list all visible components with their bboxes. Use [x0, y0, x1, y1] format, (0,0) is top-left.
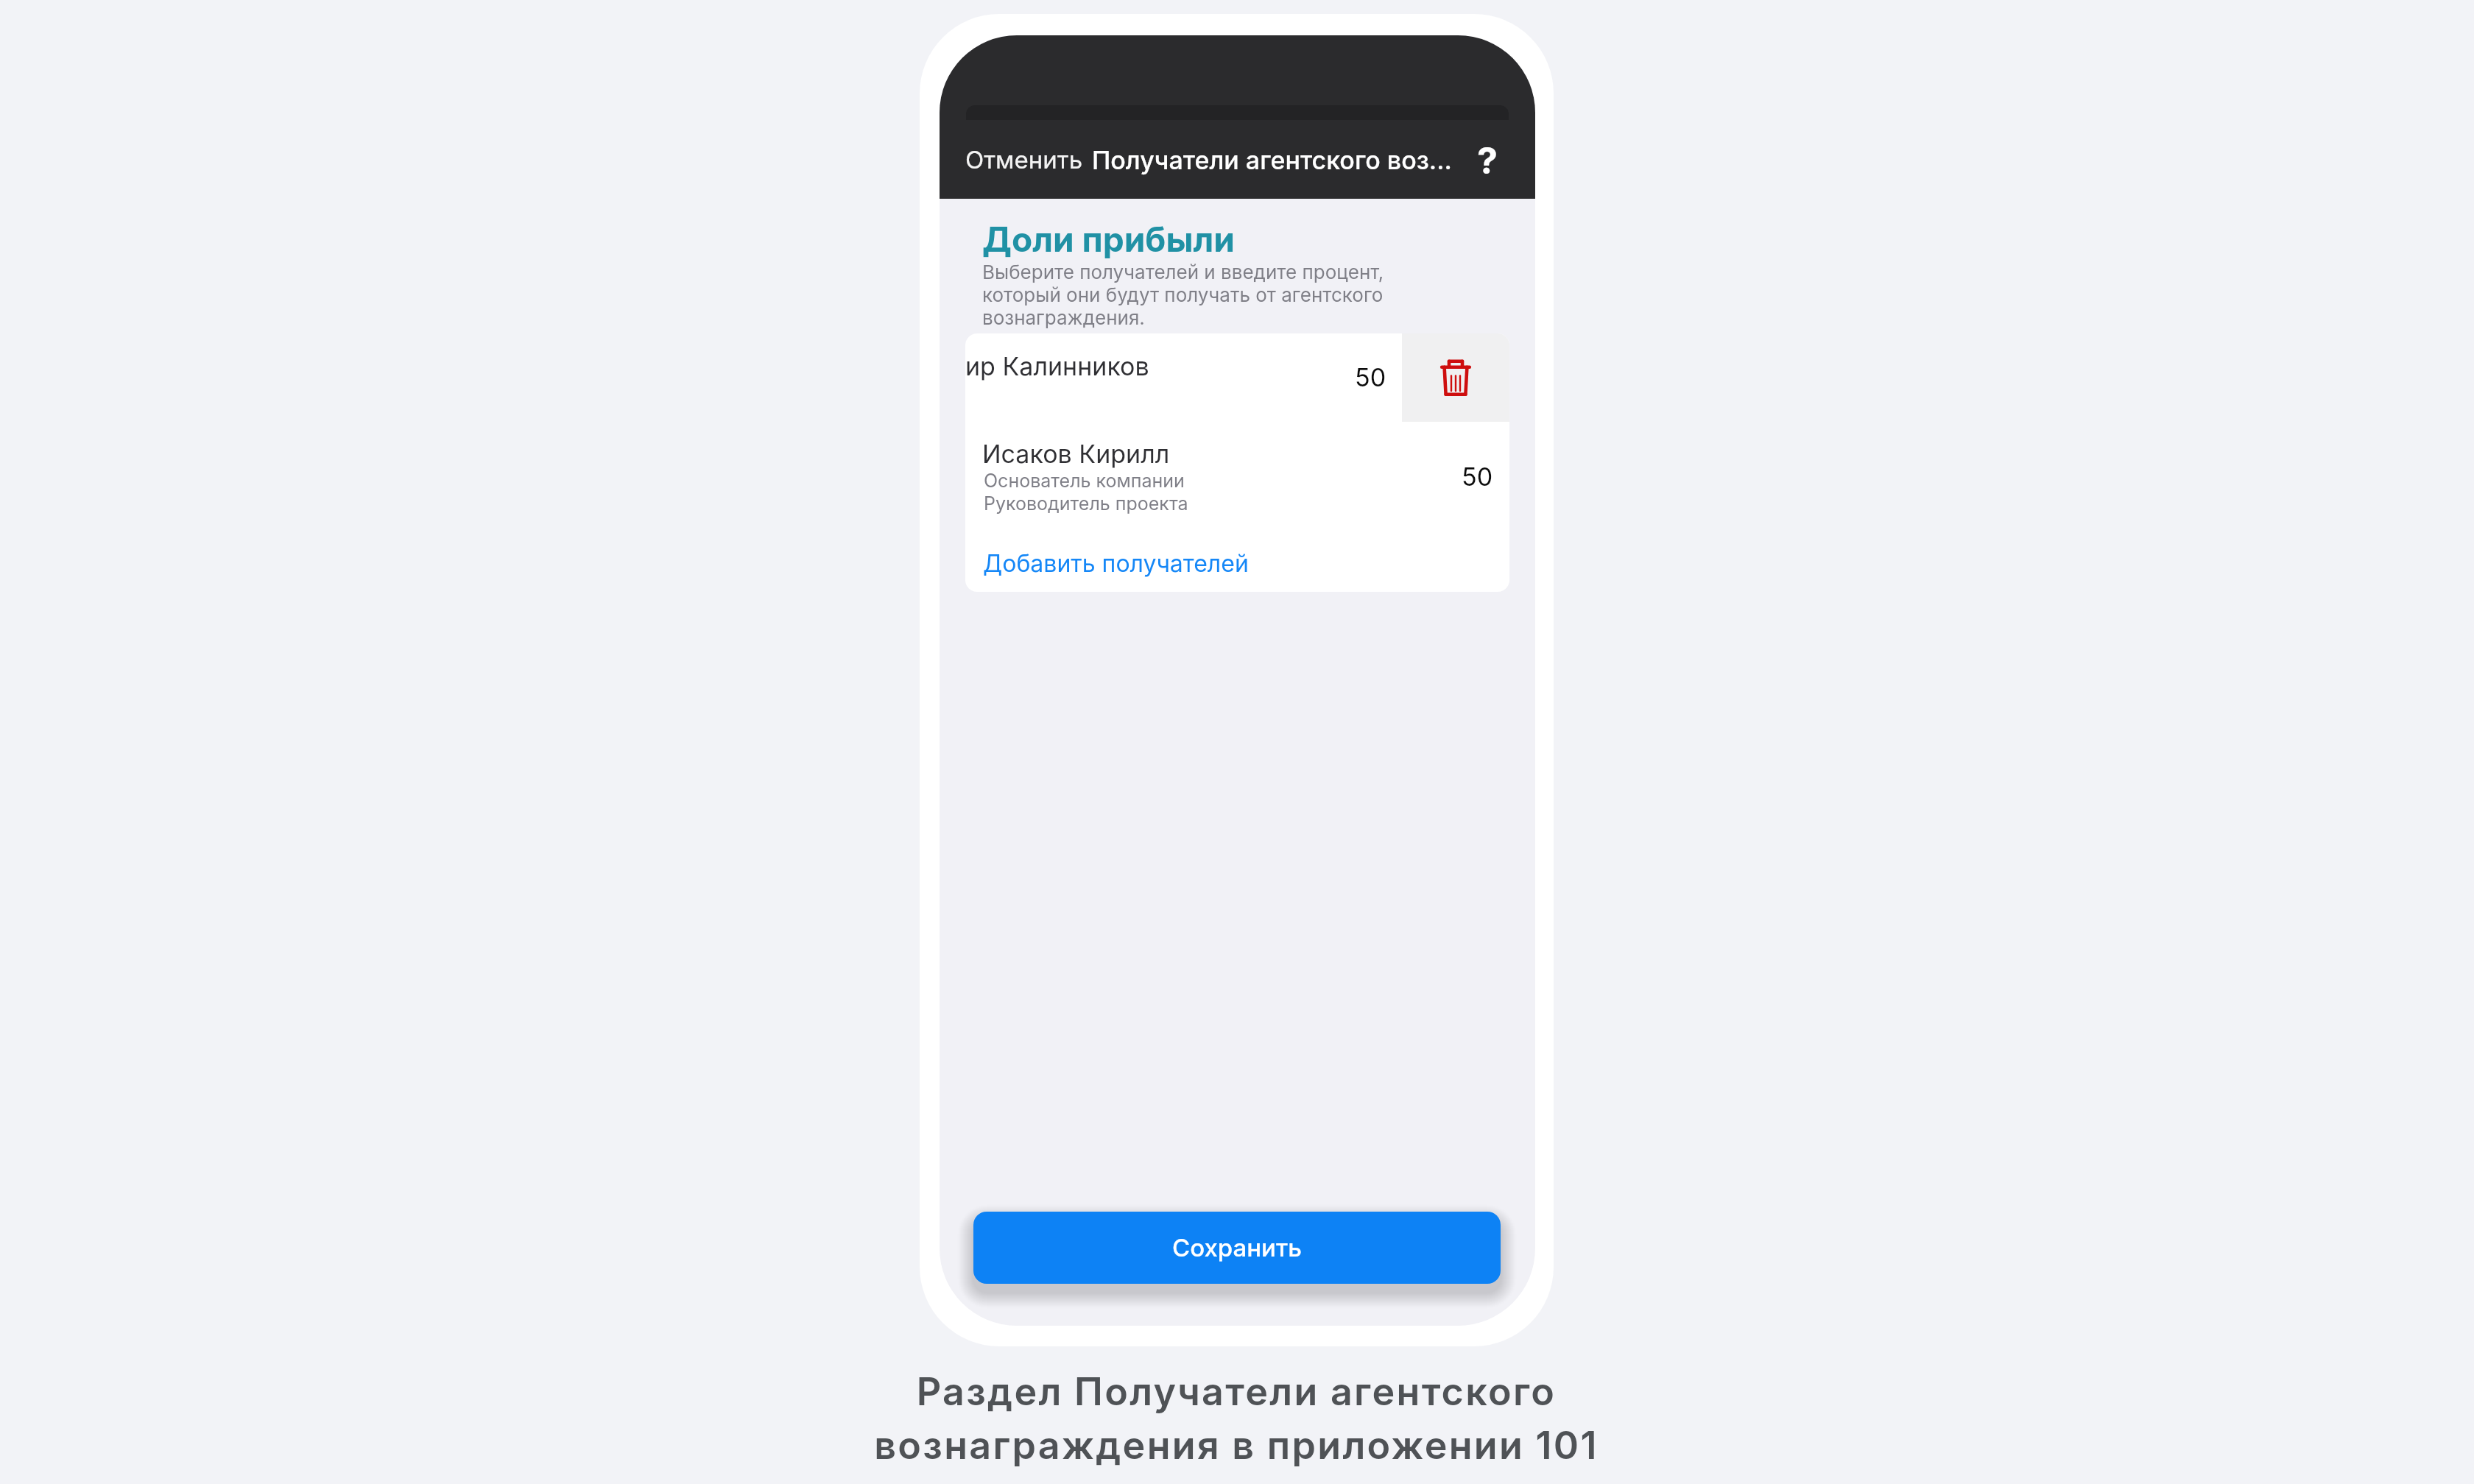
- staticText: Раздел Получатели агентского вознагражде…: [802, 1368, 1671, 1469]
- button[interactable]: Сохранить: [973, 1212, 1501, 1284]
- button[interactable]: ир Калинников: [965, 333, 1402, 422]
- button[interactable]: Отменить: [951, 130, 1098, 189]
- staticText: Отменить: [965, 145, 1083, 174]
- staticText: Исаков Кирилл: [982, 439, 1170, 469]
- button[interactable]: Добавить получателей: [968, 534, 1264, 592]
- button[interactable]: Справка: [1465, 138, 1510, 183]
- staticText: Доли прибыли: [982, 219, 1235, 260]
- staticText: Основатель компании Руководитель проекта: [984, 470, 1188, 515]
- staticText: Получатели агентского воз...: [1092, 145, 1452, 175]
- staticText: ир Калинников: [965, 351, 1149, 381]
- staticText: 50: [1355, 362, 1386, 392]
- staticText: ?: [1477, 138, 1498, 183]
- staticText: Выберите получателей и введите процент, …: [982, 261, 1424, 329]
- staticText: Сохранить: [1172, 1233, 1303, 1262]
- button[interactable]: Удалить: [1402, 333, 1509, 422]
- staticText: 50: [1462, 462, 1493, 492]
- staticText: Добавить получателей: [983, 549, 1249, 578]
